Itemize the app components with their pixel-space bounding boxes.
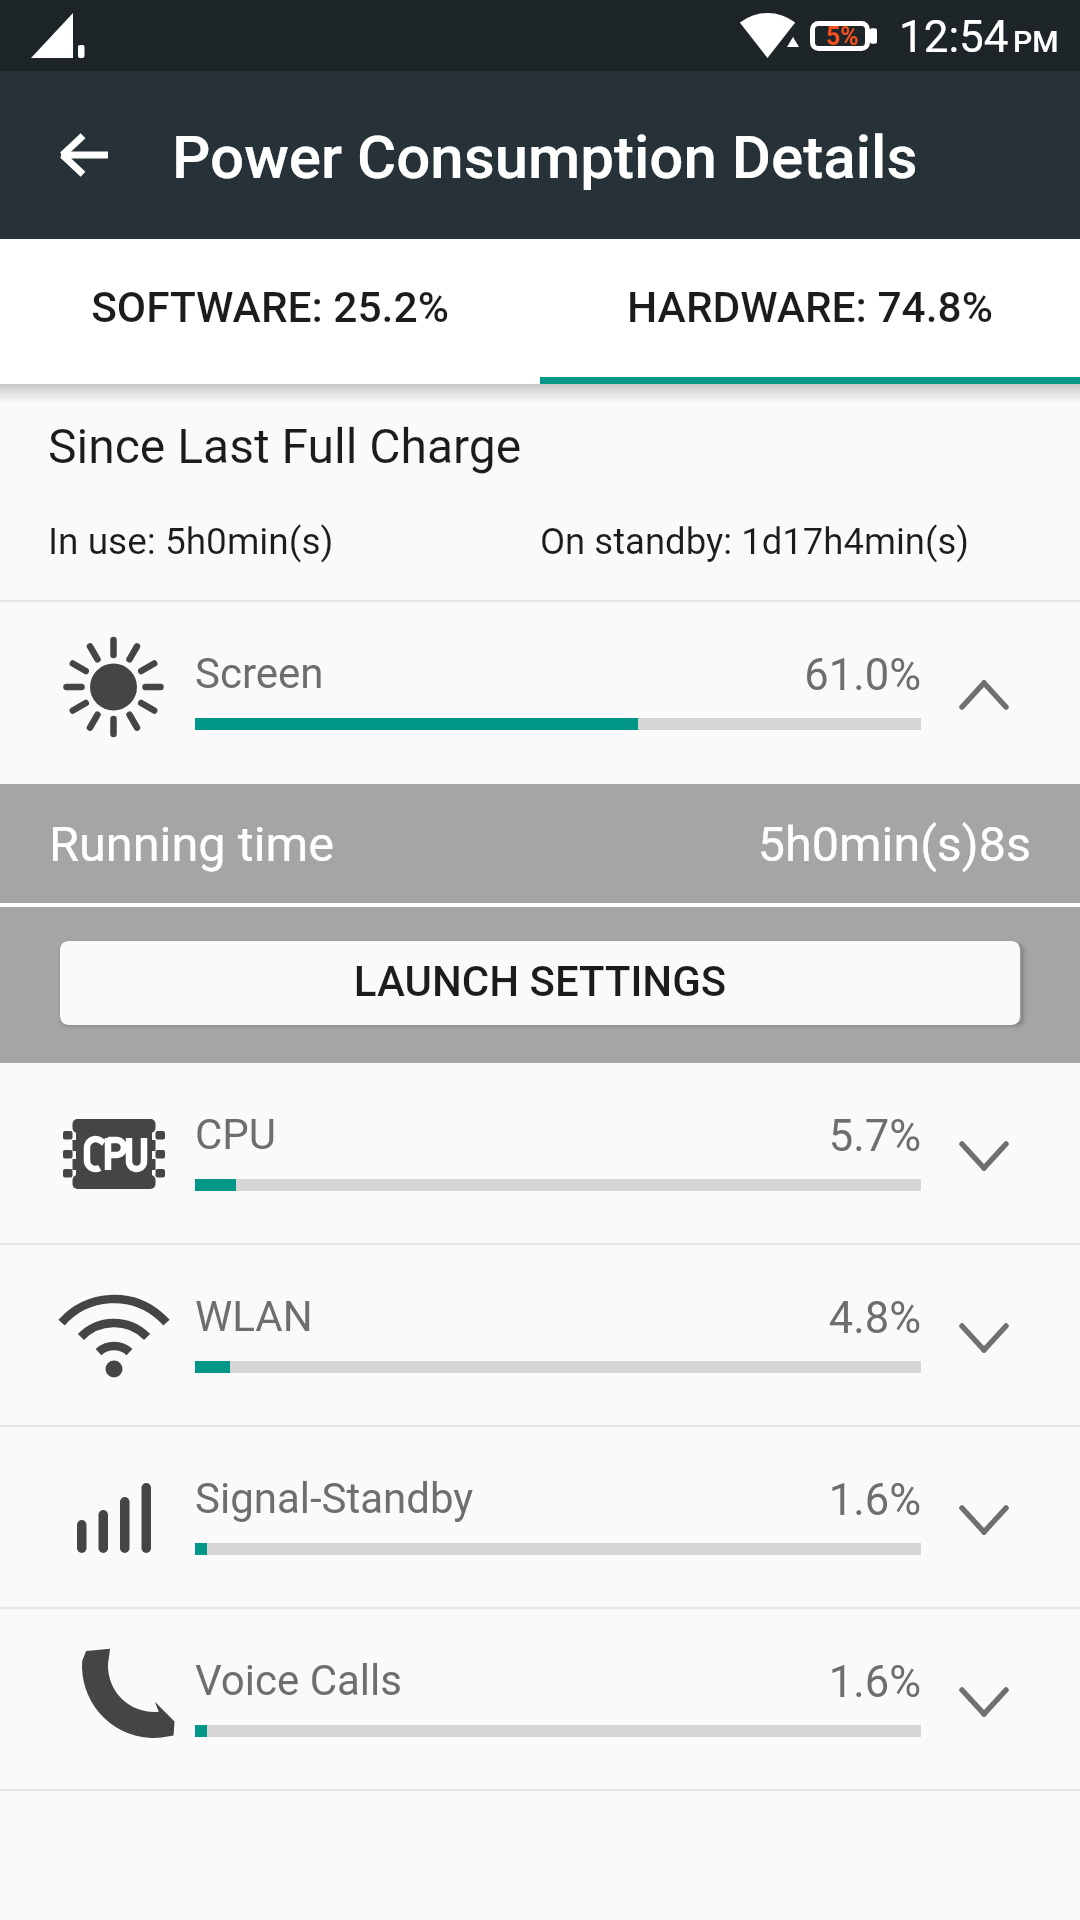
staticText: WLAN — [195, 1292, 313, 1341]
staticText: HARDWARE: 74.8% — [540, 283, 1080, 333]
button[interactable]: Screen — [0, 602, 1080, 784]
staticText: 5.7% — [0, 1111, 921, 1162]
button[interactable]: Back — [40, 111, 128, 199]
staticText: Screen — [195, 649, 324, 698]
staticText: On standby: 1d17h4min(s) — [540, 520, 969, 563]
staticText: Signal-Standby — [195, 1474, 474, 1523]
staticText: Voice Calls — [195, 1656, 402, 1705]
staticText: Since Last Full Charge — [48, 418, 522, 474]
button[interactable]: HARDWARE: 74.8% — [540, 239, 1080, 384]
staticText: 12:54 — [899, 11, 1009, 63]
staticText: 5h0min(s)8s — [0, 816, 1031, 873]
button[interactable]: WLAN — [0, 1245, 1080, 1427]
staticText: PM — [1013, 24, 1059, 59]
staticText: 1.6% — [0, 1475, 921, 1526]
button[interactable]: Voice Calls — [0, 1609, 1080, 1791]
staticText: 1.6% — [0, 1657, 921, 1708]
staticText: Running time — [49, 816, 335, 873]
staticText: 61.0% — [0, 650, 921, 701]
staticText: LAUNCH SETTINGS — [60, 957, 1020, 1006]
staticText: Power Consumption Details — [172, 122, 918, 192]
staticText: 5% — [826, 22, 859, 51]
button[interactable]: Signal-Standby — [0, 1427, 1080, 1609]
staticText: CPU — [195, 1110, 277, 1159]
button[interactable]: LAUNCH SETTINGS — [60, 941, 1020, 1025]
button[interactable]: CPU — [0, 1063, 1080, 1245]
staticText: 4.8% — [0, 1293, 921, 1344]
staticText: In use: 5h0min(s) — [48, 520, 334, 563]
staticText: SOFTWARE: 25.2% — [0, 283, 540, 333]
button[interactable]: SOFTWARE: 25.2% — [0, 239, 540, 384]
